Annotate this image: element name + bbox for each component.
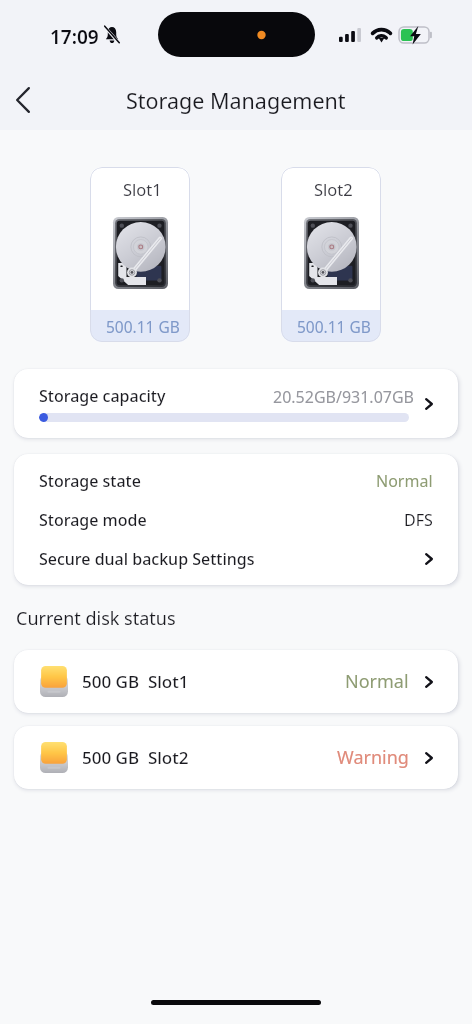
- button[interactable]: Storage capacity: [14, 369, 458, 438]
- staticText: Storage Management: [126, 86, 346, 115]
- button[interactable]: Storage mode: [14, 500, 458, 539]
- button[interactable]: Back: [3, 80, 43, 120]
- staticText: Storage capacity: [39, 385, 166, 407]
- staticText: Slot2: [314, 178, 353, 200]
- staticText: 500.11 GB: [106, 316, 180, 337]
- staticText: Secure dual backup Settings: [39, 548, 255, 570]
- staticText: 17:09: [50, 24, 99, 50]
- button[interactable]: Slot2: [281, 167, 381, 342]
- button[interactable]: Storage state: [14, 461, 458, 500]
- staticText: Current disk status: [16, 606, 176, 631]
- staticText: 500 GB Slot2: [82, 746, 189, 769]
- staticText: Warning: [337, 745, 409, 770]
- staticText: Normal: [345, 669, 409, 694]
- button[interactable]: 500 GB Slot2: [14, 726, 458, 789]
- staticText: Storage state: [39, 470, 141, 492]
- button[interactable]: Secure dual backup Settings: [14, 539, 458, 578]
- staticText: 500.11 GB: [297, 316, 371, 337]
- button[interactable]: Slot1: [90, 167, 190, 342]
- staticText: Storage mode: [39, 509, 147, 531]
- button[interactable]: 500 GB Slot1: [14, 650, 458, 713]
- staticText: 500 GB Slot1: [82, 670, 189, 693]
- staticText: DFS: [404, 509, 433, 531]
- staticText: Slot1: [123, 178, 162, 200]
- staticText: 20.52GB/931.07GB: [273, 386, 414, 408]
- staticText: Normal: [376, 470, 433, 492]
